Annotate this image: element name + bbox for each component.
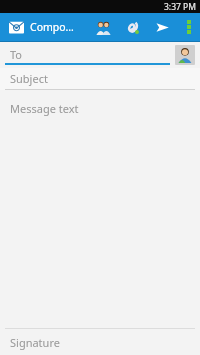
button[interactable]: Pick contact [175, 45, 195, 65]
button[interactable]: Contacts [88, 13, 118, 41]
staticText: Subject [10, 71, 48, 86]
button[interactable]: To [0, 42, 175, 68]
button[interactable]: Signature [0, 329, 200, 355]
staticText: Message text [10, 101, 79, 116]
staticText: Signature [10, 335, 60, 350]
button[interactable]: Compo… [0, 13, 88, 41]
button[interactable]: More options [178, 13, 200, 41]
button[interactable]: Send [146, 13, 178, 41]
staticText: To [10, 47, 23, 62]
staticText: 3:37 PM [164, 1, 196, 13]
button[interactable]: Subject [0, 68, 200, 90]
staticText: Compo… [30, 20, 74, 34]
button[interactable]: Message text [0, 90, 200, 328]
button[interactable]: Attach file [118, 13, 146, 41]
